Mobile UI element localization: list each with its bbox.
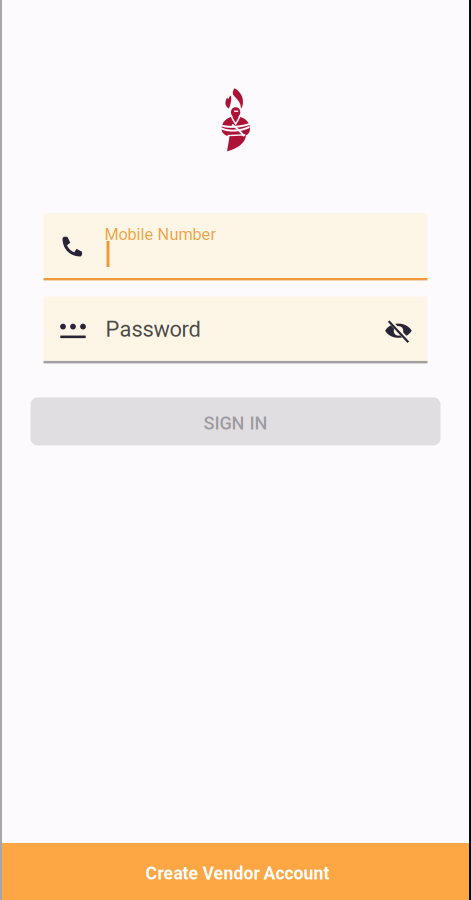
button[interactable]: Create Vendor Account — [0, 843, 471, 900]
staticText: Password — [105, 316, 200, 342]
button[interactable]: SIGN IN — [30, 397, 440, 445]
staticText: SIGN IN — [203, 413, 267, 434]
staticText: Create Vendor Account — [145, 863, 329, 884]
staticText: Mobile Number — [104, 225, 216, 244]
